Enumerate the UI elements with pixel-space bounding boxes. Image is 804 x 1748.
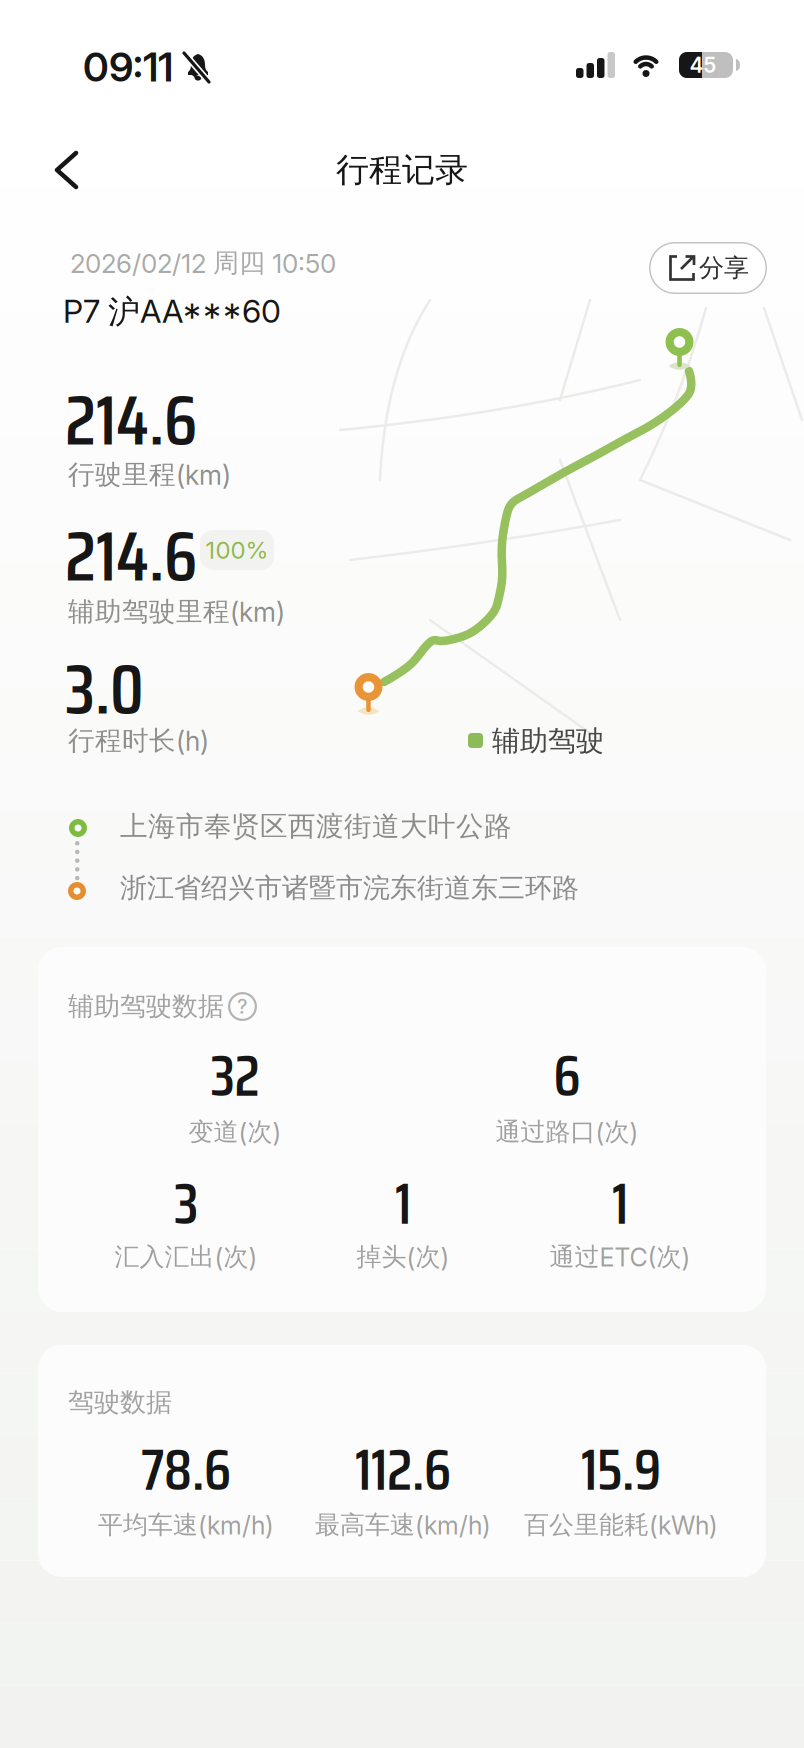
staticText: 辅助驾驶数据 xyxy=(68,990,224,1023)
staticText: 通过路口(次) xyxy=(495,1116,638,1148)
staticText: 辅助驾驶里程(km) xyxy=(68,595,285,628)
button[interactable]: 返回 xyxy=(40,136,108,204)
button[interactable]: 帮助 xyxy=(228,992,257,1021)
staticText: 3 xyxy=(174,1159,198,1249)
staticText: 112.6 xyxy=(355,1425,451,1515)
staticText: P7 沪AA***60 xyxy=(63,292,281,332)
staticText: 行程记录 xyxy=(336,149,468,191)
staticText: 100% xyxy=(205,535,268,564)
staticText: 45 xyxy=(689,52,716,78)
staticText: 变道(次) xyxy=(188,1116,281,1148)
staticText: 3.0 xyxy=(65,634,144,744)
staticText: 行程时长(h) xyxy=(68,724,209,757)
staticText: 2026/02/12 周四 10:50 xyxy=(70,247,336,279)
staticText: 辅助驾驶 xyxy=(492,723,604,759)
staticText: 09:11 xyxy=(83,43,173,91)
staticText: 78.6 xyxy=(141,1425,231,1515)
staticText: ? xyxy=(237,994,248,1019)
staticText: 掉头(次) xyxy=(356,1241,449,1273)
staticText: 32 xyxy=(210,1031,259,1121)
staticText: 1 xyxy=(395,1159,411,1249)
staticText: 15.9 xyxy=(581,1425,661,1515)
staticText: 分享 xyxy=(699,252,749,284)
staticText: 通过ETC(次) xyxy=(549,1241,690,1273)
staticText: 1 xyxy=(612,1159,628,1249)
staticText: 汇入汇出(次) xyxy=(114,1241,257,1273)
staticText: 214.6 xyxy=(65,365,197,475)
staticText: 驾驶数据 xyxy=(68,1386,172,1419)
staticText: 平均车速(km/h) xyxy=(98,1509,274,1541)
staticText: 行驶里程(km) xyxy=(68,458,231,491)
staticText: 最高车速(km/h) xyxy=(315,1509,491,1541)
staticText: 214.6 xyxy=(65,501,197,611)
staticText: 浙江省绍兴市诸暨市浣东街道东三环路 xyxy=(120,871,579,905)
button[interactable]: 分享 xyxy=(649,242,767,294)
staticText: 6 xyxy=(553,1031,580,1121)
staticText: 上海市奉贤区西渡街道大叶公路 xyxy=(120,809,512,844)
staticText: 百公里能耗(kWh) xyxy=(524,1509,718,1541)
